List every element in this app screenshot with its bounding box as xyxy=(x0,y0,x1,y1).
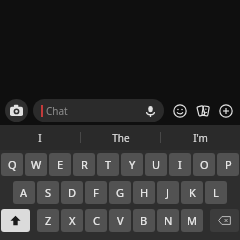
staticText: I xyxy=(178,157,182,172)
staticText: Chat xyxy=(46,104,68,118)
staticText: G xyxy=(116,185,125,200)
button[interactable]: E xyxy=(49,153,71,176)
staticText: N xyxy=(164,213,173,228)
staticText: Z xyxy=(45,213,52,228)
staticText: B xyxy=(140,213,148,228)
button[interactable]: D xyxy=(61,181,83,204)
staticText: D xyxy=(68,185,77,200)
staticText: I xyxy=(38,131,42,145)
staticText: X xyxy=(69,213,76,228)
staticText: T xyxy=(105,157,112,172)
staticText: U xyxy=(152,157,161,172)
staticText: The xyxy=(112,131,130,145)
button[interactable]: Voice input xyxy=(143,104,157,118)
button[interactable]: Stickers xyxy=(193,101,212,120)
button[interactable]: Emoji xyxy=(170,101,189,120)
staticText: F xyxy=(93,185,99,200)
button[interactable]: Shift xyxy=(1,209,30,232)
button[interactable]: K xyxy=(181,181,203,204)
staticText: C xyxy=(93,213,100,228)
button[interactable]: L xyxy=(205,181,227,204)
button[interactable]: H xyxy=(133,181,155,204)
button[interactable]: X xyxy=(61,209,83,232)
button[interactable]: V xyxy=(109,209,131,232)
button[interactable]: Y xyxy=(121,153,143,176)
staticText: I'm xyxy=(193,131,208,145)
button[interactable]: The xyxy=(81,125,160,150)
staticText: K xyxy=(189,185,196,200)
button[interactable]: S xyxy=(37,181,59,204)
button[interactable]: M xyxy=(181,209,203,232)
staticText: A xyxy=(20,185,28,200)
button[interactable]: I'm xyxy=(161,125,240,150)
button[interactable]: Add attachment xyxy=(216,101,235,120)
button[interactable]: A xyxy=(13,181,35,204)
staticText: V xyxy=(117,213,124,228)
staticText: J xyxy=(166,185,170,200)
button[interactable]: P xyxy=(217,153,239,176)
staticText: O xyxy=(200,157,209,172)
staticText: L xyxy=(213,185,219,200)
button[interactable]: C xyxy=(85,209,107,232)
button[interactable]: J xyxy=(157,181,179,204)
button[interactable]: Z xyxy=(37,209,59,232)
staticText: R xyxy=(81,157,88,172)
button[interactable]: O xyxy=(193,153,215,176)
button[interactable]: F xyxy=(85,181,107,204)
staticText: M xyxy=(187,213,197,228)
staticText: W xyxy=(31,157,42,172)
button[interactable]: T xyxy=(97,153,119,176)
staticText: Y xyxy=(129,157,136,172)
button[interactable]: B xyxy=(133,209,155,232)
staticText: P xyxy=(225,157,232,172)
button[interactable]: Q xyxy=(1,153,23,176)
button[interactable]: W xyxy=(25,153,47,176)
button[interactable]: G xyxy=(109,181,131,204)
staticText: E xyxy=(57,157,64,172)
staticText: Q xyxy=(8,157,17,172)
staticText: S xyxy=(45,185,52,200)
button[interactable]: R xyxy=(73,153,95,176)
button[interactable]: N xyxy=(157,209,179,232)
button[interactable]: U xyxy=(145,153,167,176)
button[interactable]: Camera xyxy=(5,99,28,122)
button[interactable]: Chat xyxy=(41,99,157,122)
button[interactable]: Backspace xyxy=(210,209,239,232)
staticText: H xyxy=(140,185,149,200)
button[interactable]: I xyxy=(169,153,191,176)
button[interactable]: I xyxy=(0,125,80,150)
